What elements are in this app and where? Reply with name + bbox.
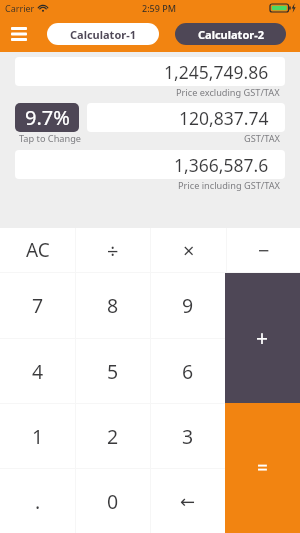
staticText: . xyxy=(35,488,41,515)
staticText: Calculator-1 xyxy=(70,27,136,42)
staticText: Tap to Change xyxy=(19,132,81,145)
staticText: − xyxy=(258,237,270,264)
button[interactable]: Multiply xyxy=(151,228,226,272)
button[interactable]: All clear xyxy=(0,228,75,272)
button[interactable]: Tap to Change xyxy=(15,132,84,145)
button[interactable]: Minus xyxy=(227,228,300,272)
staticText: 2:59 PM xyxy=(142,2,176,14)
staticText: = xyxy=(257,455,268,481)
button[interactable]: Plus xyxy=(225,273,300,403)
button[interactable]: Decimal point xyxy=(0,469,75,533)
button[interactable]: 1,245,749.86 xyxy=(15,57,285,86)
staticText: ← xyxy=(180,491,196,512)
button[interactable]: Calculator-2 xyxy=(175,23,286,45)
staticText: Price excluding GST/TAX xyxy=(176,86,280,99)
button[interactable]: 2 xyxy=(76,404,150,468)
button[interactable]: 9.7% xyxy=(15,103,79,132)
button[interactable]: 0 xyxy=(76,469,150,533)
staticText: Price including GST/TAX xyxy=(178,179,280,192)
staticText: 6 xyxy=(182,358,194,385)
button[interactable]: Divide xyxy=(76,228,150,272)
button[interactable]: 4 xyxy=(0,339,75,403)
button[interactable]: 8 xyxy=(76,273,150,338)
button[interactable]: 1 xyxy=(0,404,75,468)
button[interactable]: 7 xyxy=(0,273,75,338)
staticText: Carrier xyxy=(5,2,35,14)
staticText: 9 xyxy=(182,292,194,319)
staticText: 120,837.74 xyxy=(179,106,269,130)
staticText: GST/TAX xyxy=(244,132,280,145)
staticText: 8 xyxy=(107,292,119,319)
staticText: 2 xyxy=(107,423,119,450)
staticText: AC xyxy=(26,237,50,263)
staticText: 1,366,587.6 xyxy=(174,153,269,177)
button[interactable]: 120,837.74 xyxy=(87,103,285,132)
staticText: 3 xyxy=(182,423,194,450)
button[interactable]: 3 xyxy=(151,404,225,468)
staticText: ÷ xyxy=(107,237,119,264)
staticText: 5 xyxy=(107,358,119,385)
staticText: 1,245,749.86 xyxy=(164,60,269,84)
button[interactable]: 6 xyxy=(151,339,225,403)
button[interactable]: Calculator-1 xyxy=(47,23,159,45)
staticText: 9.7% xyxy=(25,104,70,131)
button[interactable]: Backspace xyxy=(151,469,225,533)
button[interactable]: 5 xyxy=(76,339,150,403)
button[interactable]: Open navigation menu xyxy=(0,16,37,52)
staticText: 4 xyxy=(32,358,44,385)
staticText: Calculator-2 xyxy=(198,27,264,42)
staticText: + xyxy=(256,324,269,353)
staticText: × xyxy=(183,237,195,264)
staticText: 1 xyxy=(32,423,44,450)
staticText: 7 xyxy=(32,292,44,319)
button[interactable]: 1,366,587.6 xyxy=(15,150,285,179)
button[interactable]: 9 xyxy=(151,273,225,338)
staticText: 0 xyxy=(107,488,119,515)
button[interactable]: Equals xyxy=(225,403,300,533)
